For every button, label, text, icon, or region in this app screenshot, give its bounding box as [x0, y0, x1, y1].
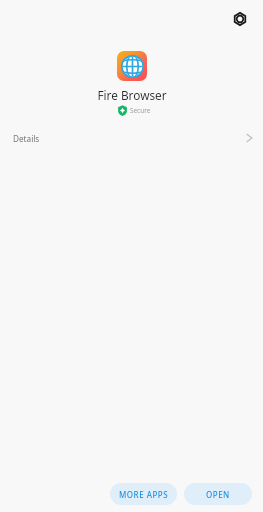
button[interactable]: Settings	[228, 7, 252, 31]
staticText: Fire Browser	[97, 87, 167, 103]
button[interactable]: OPEN	[184, 483, 252, 505]
staticText: OPEN	[206, 489, 230, 500]
staticText: Secure	[130, 106, 151, 115]
button[interactable]: Details	[0, 124, 263, 152]
other: Open details	[243, 132, 255, 144]
staticText: MORE APPS	[119, 489, 169, 500]
staticText: Details	[13, 133, 40, 144]
button[interactable]: MORE APPS	[110, 483, 177, 505]
